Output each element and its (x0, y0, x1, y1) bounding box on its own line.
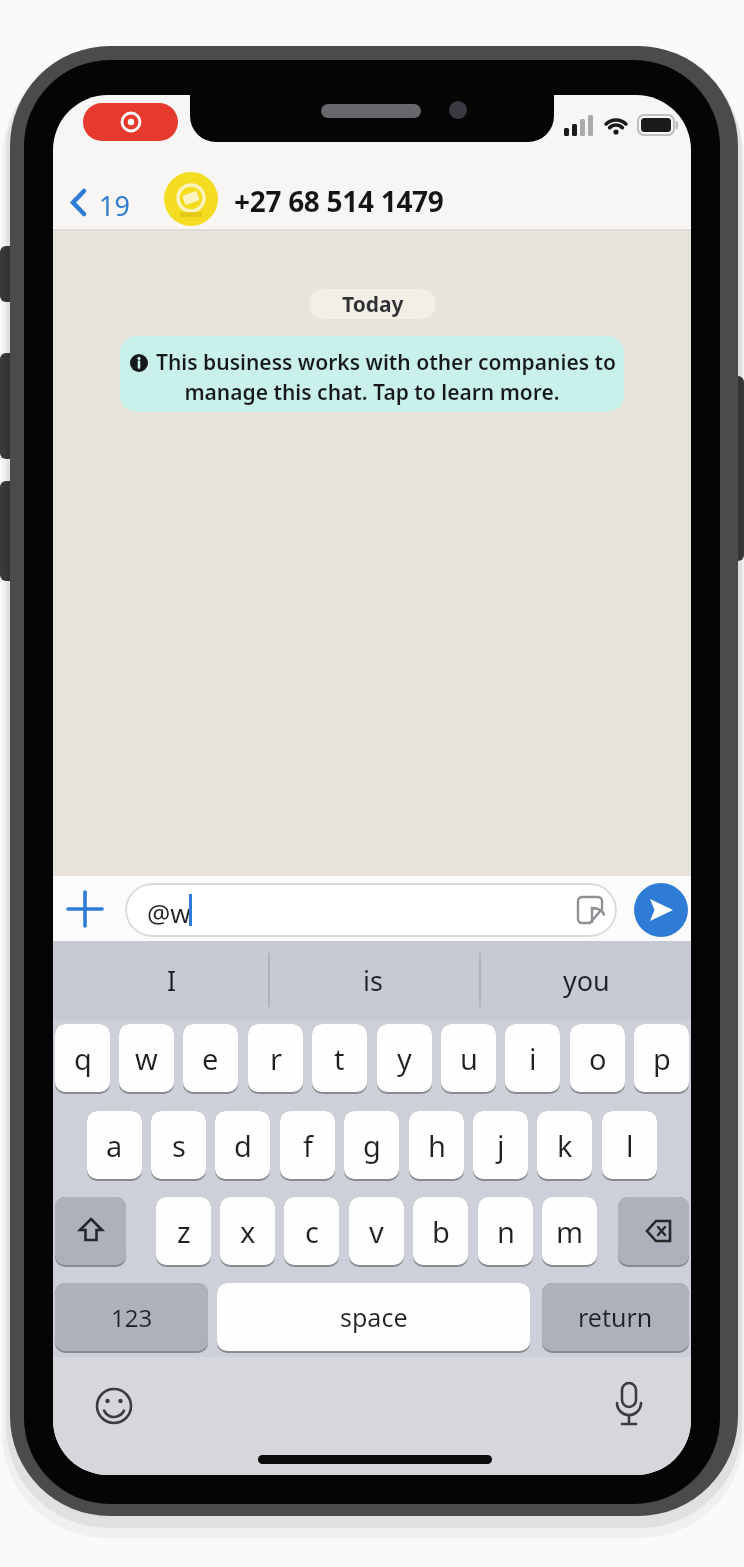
staticText: p (653, 1039, 671, 1078)
staticText: 19 (99, 187, 130, 224)
staticText: j (497, 1126, 505, 1165)
button[interactable] (618, 1197, 689, 1265)
staticText: t (334, 1039, 345, 1078)
staticText: n (497, 1212, 515, 1251)
button[interactable] (164, 172, 218, 226)
button[interactable]: a (87, 1111, 142, 1179)
button[interactable]: b (413, 1197, 468, 1265)
staticText: d (234, 1126, 252, 1165)
staticText: h (428, 1126, 446, 1165)
staticText: This business works with other companies… (156, 348, 616, 377)
staticText: +27 68 514 1479 (234, 182, 444, 220)
button[interactable] (94, 1386, 134, 1426)
staticText: y (397, 1039, 412, 1078)
staticText: a (106, 1126, 123, 1165)
button[interactable]: you (481, 941, 691, 1020)
staticText: k (557, 1126, 573, 1165)
button[interactable]: This business works with other companies… (120, 336, 624, 412)
staticText: you (563, 962, 610, 999)
button[interactable]: v (349, 1197, 404, 1265)
button[interactable]: h (409, 1111, 464, 1179)
staticText: space (340, 1300, 408, 1334)
staticText: is (363, 962, 383, 999)
button[interactable]: space (217, 1283, 530, 1351)
button[interactable]: z (156, 1197, 211, 1265)
button[interactable]: m (542, 1197, 597, 1265)
button[interactable]: o (570, 1024, 625, 1092)
button[interactable]: s (151, 1111, 206, 1179)
button[interactable]: u (441, 1024, 496, 1092)
button[interactable]: g (344, 1111, 399, 1179)
button[interactable] (55, 1197, 126, 1265)
staticText: x (240, 1212, 256, 1251)
button[interactable]: l (602, 1111, 657, 1179)
button[interactable]: w (119, 1024, 174, 1092)
staticText: g (363, 1126, 381, 1165)
staticText: o (589, 1039, 607, 1078)
staticText: w (135, 1039, 158, 1078)
staticText: c (305, 1212, 319, 1251)
button[interactable]: return (542, 1283, 689, 1351)
button[interactable]: i (505, 1024, 560, 1092)
staticText: return (578, 1300, 653, 1334)
staticText: @w (147, 895, 191, 930)
button[interactable]: q (55, 1024, 110, 1092)
staticText: s (172, 1126, 186, 1165)
button[interactable]: f (280, 1111, 335, 1179)
staticText: Today (342, 290, 404, 319)
staticText: z (177, 1212, 191, 1251)
button[interactable]: @w (125, 883, 617, 937)
staticText: e (202, 1039, 219, 1078)
button[interactable]: I (66, 941, 278, 1020)
button[interactable]: k (537, 1111, 592, 1179)
staticText: u (460, 1039, 478, 1078)
button[interactable]: p (634, 1024, 689, 1092)
button[interactable]: n (478, 1197, 533, 1265)
button[interactable]: x (220, 1197, 275, 1265)
staticText: manage this chat. Tap to learn more. (120, 378, 624, 407)
button[interactable]: c (284, 1197, 339, 1265)
button[interactable] (65, 889, 105, 929)
staticText: b (432, 1212, 450, 1251)
button[interactable]: r (248, 1024, 303, 1092)
staticText: r (270, 1039, 282, 1078)
button[interactable]: j (473, 1111, 528, 1179)
button[interactable] (609, 1381, 649, 1431)
button[interactable]: is (270, 941, 476, 1020)
staticText: i (529, 1039, 537, 1078)
button[interactable]: e (183, 1024, 238, 1092)
staticText: f (303, 1126, 313, 1165)
staticText: l (626, 1126, 634, 1165)
staticText: 123 (111, 1301, 153, 1334)
button[interactable]: d (215, 1111, 270, 1179)
staticText: v (369, 1212, 384, 1251)
button[interactable] (634, 883, 688, 937)
button[interactable]: t (312, 1024, 367, 1092)
staticText: q (74, 1039, 92, 1078)
button[interactable]: y (377, 1024, 432, 1092)
button[interactable] (83, 103, 178, 141)
staticText: I (167, 962, 177, 999)
button[interactable]: 19 (61, 179, 137, 225)
button[interactable]: 123 (55, 1283, 208, 1351)
staticText: m (556, 1212, 584, 1251)
